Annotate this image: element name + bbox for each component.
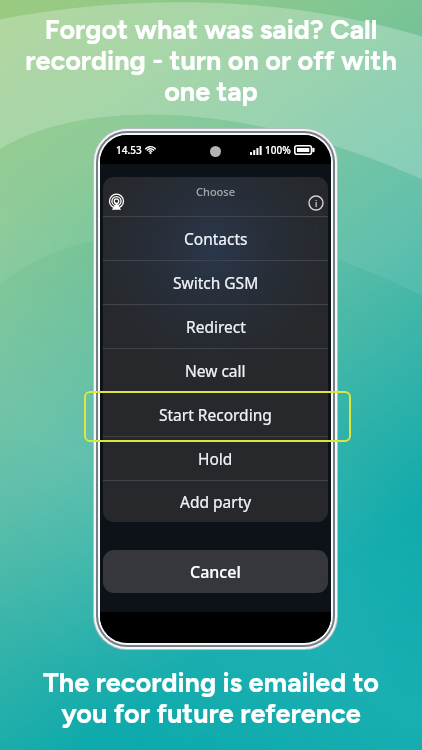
staticText: New call [185, 360, 246, 381]
button[interactable]: New call [103, 349, 328, 392]
staticText: Choose [196, 184, 235, 199]
staticText: Cancel [190, 561, 241, 583]
button[interactable]: Switch GSM [103, 261, 328, 304]
staticText: Redirect [186, 316, 246, 337]
other: AirPlay [108, 194, 125, 211]
staticText: Switch GSM [173, 272, 259, 293]
button[interactable]: Hold [103, 437, 328, 480]
button[interactable]: Info [308, 195, 324, 211]
button[interactable]: Contacts [103, 217, 328, 260]
staticText: Hold [198, 448, 233, 469]
button[interactable]: Start Recording [103, 393, 328, 436]
staticText: Forgot what was said? Call recording - t… [11, 13, 411, 108]
staticText: i [315, 197, 318, 209]
staticText: 14.53 [116, 143, 142, 157]
staticText: The recording is emailed to you for futu… [22, 666, 400, 730]
staticText: 100% [265, 143, 291, 157]
staticText: Start Recording [159, 404, 272, 425]
button[interactable]: Cancel [103, 550, 328, 593]
button[interactable]: Redirect [103, 305, 328, 348]
staticText: Contacts [184, 228, 248, 249]
button[interactable]: Add party [103, 481, 328, 522]
staticText: Add party [180, 491, 252, 512]
